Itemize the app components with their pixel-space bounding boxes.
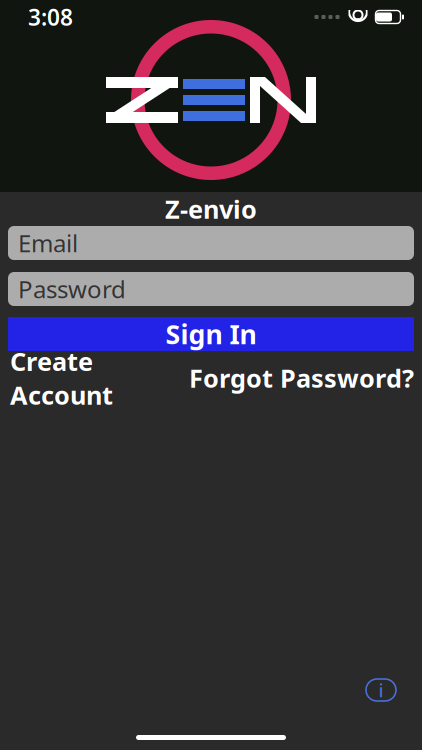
staticText: 3:08 — [28, 2, 73, 32]
staticText: Z-envio — [165, 192, 257, 226]
staticText: Email — [18, 227, 78, 259]
button[interactable]: Sign In — [8, 317, 414, 351]
staticText: Sign In — [165, 316, 256, 352]
button[interactable]: Create Account — [0, 363, 123, 393]
staticText: Password — [18, 273, 126, 305]
staticText: i — [378, 678, 383, 702]
staticText: Forgot Password? — [189, 361, 414, 395]
button[interactable]: Forgot Password? — [181, 363, 422, 393]
staticText: Create Account — [10, 344, 113, 412]
button[interactable]: Information — [366, 679, 396, 701]
